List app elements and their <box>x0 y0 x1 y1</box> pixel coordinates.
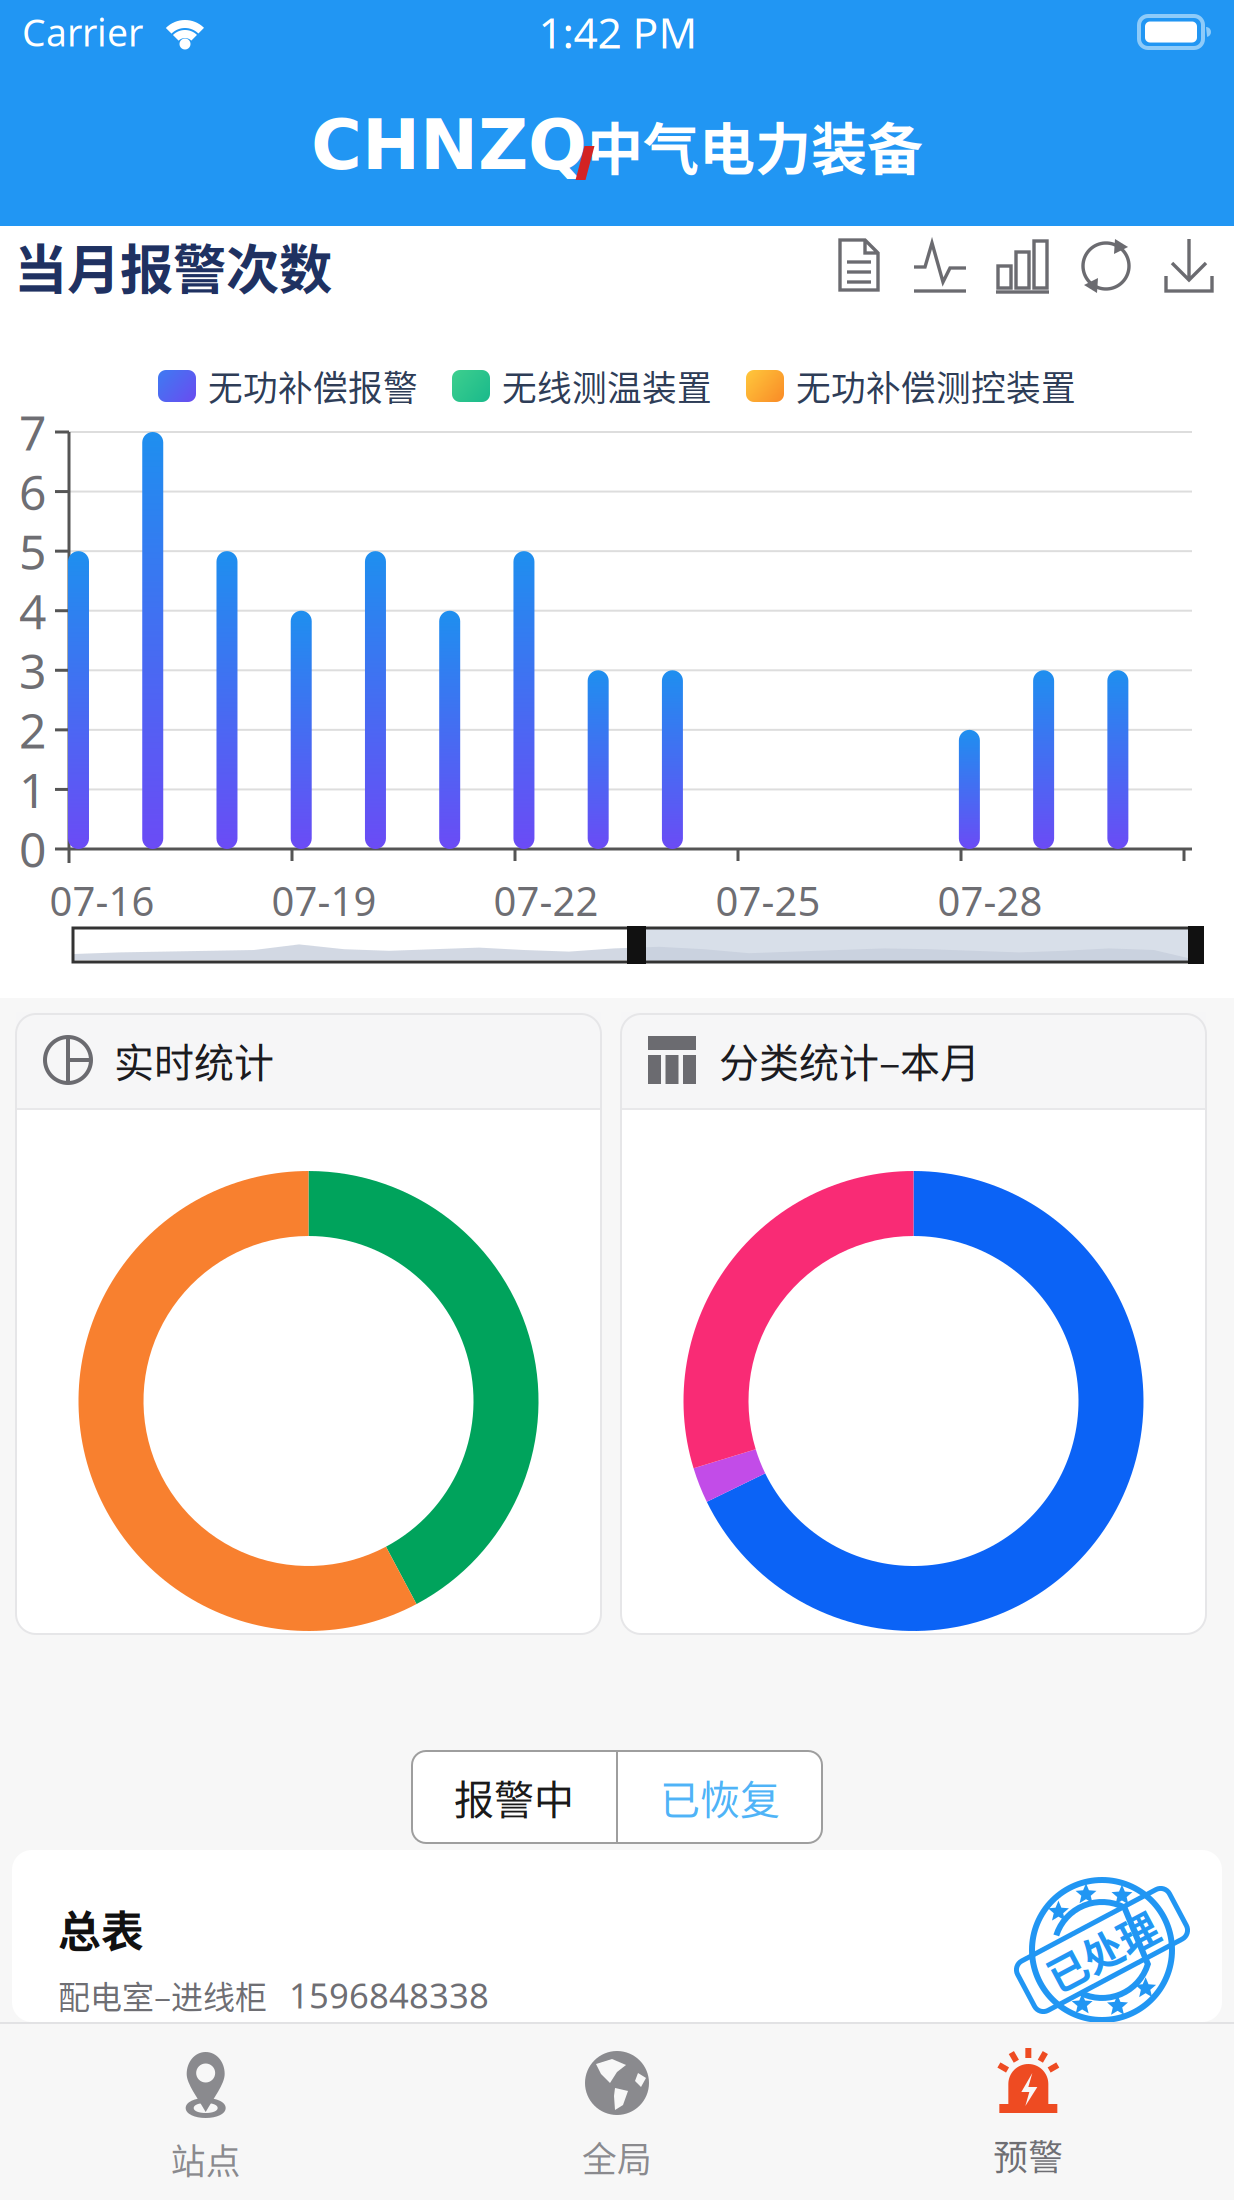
button[interactable]: Report <box>833 238 885 294</box>
staticText: 7 <box>19 400 46 464</box>
staticText: 1:42 PM <box>538 4 697 60</box>
staticText: 实时统计 <box>114 1031 274 1089</box>
staticText: 中气电力装备 <box>587 104 923 186</box>
staticText: 6 <box>19 460 46 523</box>
staticText: 2 <box>19 698 46 762</box>
button[interactable]: 预警 <box>823 2024 1234 2200</box>
staticText: CHNZQ <box>311 105 587 185</box>
button[interactable]: 全局 <box>411 2024 823 2200</box>
staticText: 分类统计–本月 <box>719 1031 980 1089</box>
staticText: 全局 <box>582 2132 652 2182</box>
staticText: 预警 <box>993 2130 1063 2180</box>
staticText: 无功补偿测控装置 <box>796 361 1076 411</box>
staticText: 0 <box>19 817 46 881</box>
button[interactable]: 总表 <box>0 1850 1234 2022</box>
staticText: Carrier <box>22 7 143 57</box>
button[interactable]: 站点 <box>0 2024 411 2200</box>
staticText: 1 <box>19 758 46 821</box>
staticText: 总表 <box>58 1898 144 1960</box>
staticText: 1596848338 <box>289 1972 489 2018</box>
button[interactable]: Download <box>1134 238 1216 294</box>
staticText: 07-25 <box>715 874 820 927</box>
staticText: 无功补偿报警 <box>208 361 418 411</box>
staticText: 5 <box>19 519 46 583</box>
staticText: 配电室–进线柜 <box>58 1972 267 2018</box>
staticText: 已处理 <box>1042 1921 1162 1979</box>
button[interactable]: 报警中 <box>412 1751 616 1843</box>
staticText: 当月报警次数 <box>14 227 332 305</box>
staticText: 报警中 <box>454 1768 574 1826</box>
staticText: 4 <box>19 579 46 642</box>
staticText: 无线测温装置 <box>502 361 712 411</box>
staticText: 站点 <box>171 2134 241 2184</box>
staticText: 07-19 <box>271 874 376 927</box>
button[interactable]: Line chart <box>885 238 967 294</box>
staticText: 07-16 <box>49 874 154 927</box>
staticText: 07-22 <box>493 874 598 927</box>
staticText: 3 <box>19 638 46 702</box>
button[interactable]: Refresh <box>1050 237 1134 295</box>
staticText: 07-28 <box>937 874 1042 927</box>
staticText: 已恢复 <box>660 1768 780 1826</box>
button[interactable]: Bar chart <box>967 238 1050 294</box>
button[interactable]: 已恢复 <box>618 1751 822 1843</box>
